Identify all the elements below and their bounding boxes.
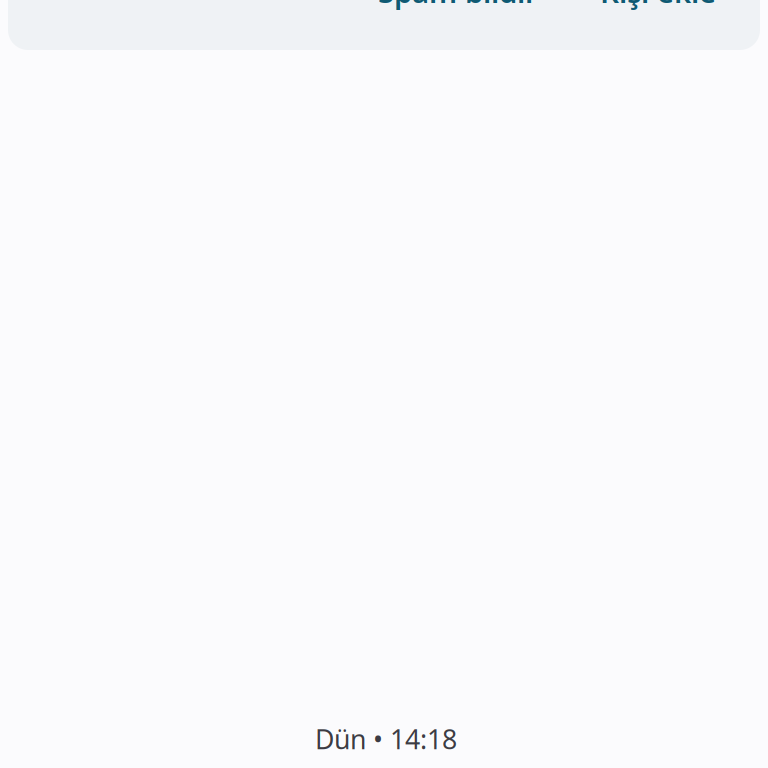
staticText: Spam bildir (378, 0, 538, 11)
staticText: Kişi ekle (600, 0, 716, 11)
button[interactable]: Spam bildir (378, 0, 538, 22)
button[interactable]: Kişi ekle (600, 0, 716, 22)
staticText: Dün • 14:18 (315, 721, 457, 757)
